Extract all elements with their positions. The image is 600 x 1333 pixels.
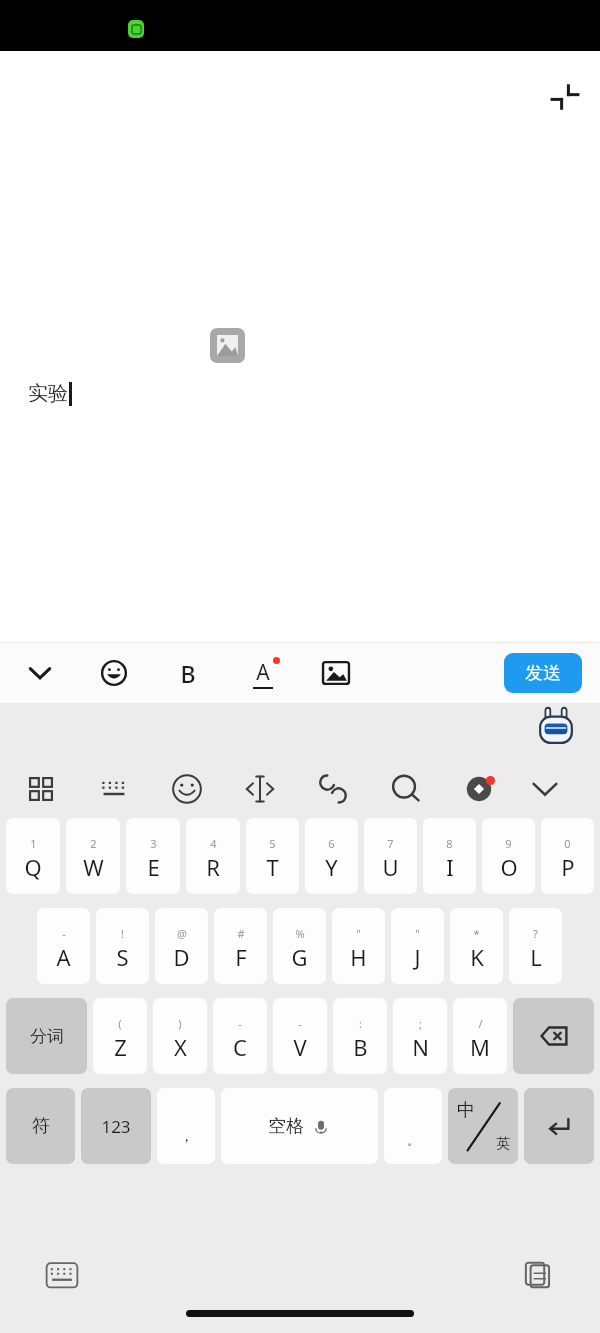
button[interactable]: Hide keyboard (524, 768, 566, 810)
button[interactable]: 6 (305, 818, 358, 894)
button[interactable]: 1 (6, 818, 60, 894)
button[interactable]: Assistant (534, 706, 578, 750)
staticText: B (353, 1032, 368, 1062)
button[interactable]: ; (393, 998, 447, 1074)
button[interactable]: " (332, 908, 385, 984)
button[interactable]: Emoji (166, 768, 208, 810)
button[interactable]: Text style (244, 654, 282, 692)
staticText: 中 (457, 1099, 475, 1122)
staticText: 9 (505, 836, 512, 851)
button[interactable]: * (450, 908, 503, 984)
staticText: 3 (150, 836, 157, 851)
button[interactable]: Clipboard (518, 1255, 558, 1295)
button[interactable]: @ (155, 908, 208, 984)
staticText: H (350, 942, 367, 972)
staticText: G (291, 942, 308, 972)
button[interactable]: 8 (423, 818, 476, 894)
staticText: 7 (387, 836, 394, 851)
staticText: : (359, 1016, 362, 1031)
staticText: - (62, 926, 66, 941)
staticText: E (147, 852, 160, 882)
staticText: B (180, 658, 196, 689)
button[interactable]: 。 (384, 1088, 442, 1164)
staticText: 123 (101, 1115, 131, 1138)
staticText: 实验 (28, 381, 68, 406)
staticText: " (415, 926, 420, 941)
staticText: C (233, 1032, 247, 1062)
button[interactable]: # (214, 908, 267, 984)
button[interactable]: Edit cursor (239, 768, 281, 810)
other: Enter (524, 1088, 594, 1164)
button[interactable]: 5 (246, 818, 299, 894)
button[interactable]: - (37, 908, 90, 984)
button[interactable]: Image (210, 328, 245, 363)
button[interactable]: / (453, 998, 507, 1074)
button[interactable]: 123 (81, 1088, 151, 1164)
button[interactable]: Keyboard (42, 1255, 82, 1295)
button[interactable]: 0 (541, 818, 594, 894)
button[interactable]: Emoji (96, 655, 132, 691)
staticText: V (293, 1032, 307, 1062)
button[interactable]: 符 (6, 1088, 75, 1164)
button[interactable]: 3 (126, 818, 180, 894)
staticText: 8 (446, 836, 453, 851)
button[interactable]: : (333, 998, 387, 1074)
staticText: 。 (407, 1132, 420, 1148)
button[interactable]: 4 (186, 818, 240, 894)
button[interactable]: Bold (170, 655, 206, 691)
button[interactable]: Settings (458, 768, 500, 810)
button[interactable]: " (391, 908, 444, 984)
staticText: X (174, 1032, 187, 1062)
staticText: / (478, 1016, 483, 1031)
button[interactable]: 发送 (504, 653, 582, 693)
button[interactable]: 分词 (6, 998, 87, 1074)
button[interactable]: % (273, 908, 326, 984)
button[interactable]: Collapse (548, 79, 582, 113)
staticText: 0 (564, 836, 571, 851)
staticText: L (530, 942, 542, 972)
staticText: # (237, 926, 245, 941)
button[interactable]: ( (93, 998, 147, 1074)
button[interactable]: Insert image (318, 655, 354, 691)
staticText: " (356, 926, 361, 941)
button[interactable]: - (273, 998, 327, 1074)
staticText: 5 (269, 836, 276, 851)
button[interactable]: Chinese English toggle (448, 1088, 518, 1164)
staticText: @ (177, 926, 187, 941)
staticText: * (473, 926, 480, 941)
button[interactable]: ! (96, 908, 149, 984)
staticText: 英 (496, 1135, 510, 1153)
button[interactable]: ) (153, 998, 207, 1074)
button[interactable]: 7 (364, 818, 417, 894)
staticText: Q (24, 852, 42, 882)
button[interactable]: Hide keyboard (22, 655, 58, 691)
staticText: 空格 (268, 1115, 304, 1138)
button[interactable]: ? (509, 908, 562, 984)
staticText: 符 (32, 1115, 50, 1138)
button[interactable]: Search (385, 768, 427, 810)
staticText: R (206, 852, 220, 882)
button[interactable]: Enter (524, 1088, 594, 1164)
staticText: ， (179, 1127, 194, 1146)
staticText: A (56, 942, 71, 972)
staticText: S (116, 942, 129, 972)
staticText: 2 (90, 836, 97, 851)
button[interactable]: 9 (482, 818, 535, 894)
staticText: W (83, 852, 104, 882)
button[interactable]: Apps (20, 768, 62, 810)
button[interactable]: - (213, 998, 267, 1074)
button[interactable]: Backspace (513, 998, 594, 1074)
staticText: K (470, 942, 484, 972)
button[interactable]: Keyboard layout (93, 768, 135, 810)
staticText: ; (419, 1016, 422, 1031)
button[interactable]: 空格 (221, 1088, 378, 1164)
other: Backspace (513, 998, 594, 1074)
button[interactable]: ， (157, 1088, 215, 1164)
staticText: N (412, 1032, 429, 1062)
button[interactable]: Link (312, 768, 354, 810)
button[interactable]: 2 (66, 818, 120, 894)
staticText: 发送 (525, 662, 561, 685)
staticText: - (238, 1016, 242, 1031)
staticText: Z (114, 1032, 127, 1062)
staticText: Y (325, 852, 338, 882)
